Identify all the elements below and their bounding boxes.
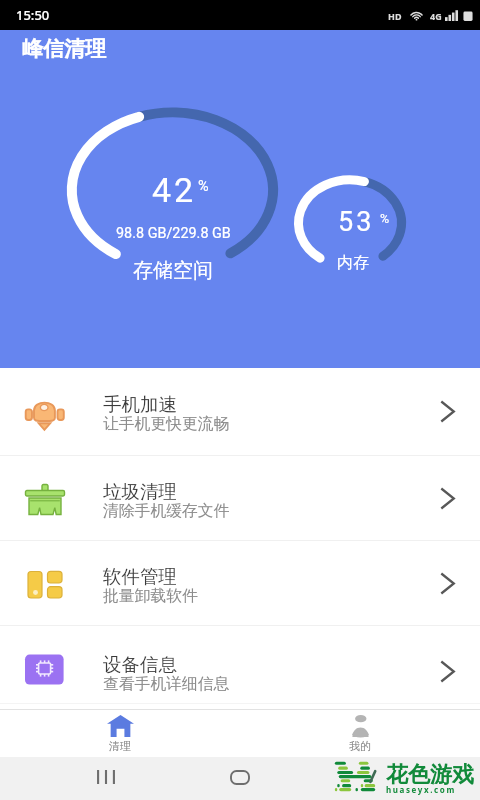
staticText: 42	[152, 170, 197, 210]
staticText: 批量卸载软件	[103, 586, 198, 606]
button[interactable]: 垃圾清理	[0, 456, 480, 540]
staticText: 峰信清理	[22, 36, 106, 62]
staticText: 15:50	[16, 6, 50, 24]
button[interactable]: 手机加速	[0, 368, 480, 455]
staticText: 清理	[109, 739, 131, 753]
staticText: 内存	[337, 253, 369, 273]
staticText: 查看手机详细信息	[103, 674, 230, 694]
staticText: 清除手机缓存文件	[103, 501, 230, 521]
staticText: 设备信息	[103, 653, 177, 676]
staticText: 软件管理	[103, 565, 177, 588]
staticText: 让手机更快更流畅	[103, 414, 230, 434]
staticText: 手机加速	[103, 393, 177, 416]
other: Recent apps	[97, 770, 115, 784]
staticText: 4G	[430, 10, 442, 22]
staticText: 垃圾清理	[103, 480, 177, 503]
button[interactable]: 我的	[240, 710, 480, 757]
staticText: %	[198, 178, 209, 195]
staticText: 花色游戏	[386, 761, 474, 789]
staticText: 我的	[349, 739, 371, 753]
staticText: 53	[338, 206, 375, 238]
staticText: HD	[388, 10, 402, 22]
button[interactable]: 设备信息	[0, 626, 480, 716]
button[interactable]: 软件管理	[0, 541, 480, 625]
other: Home	[231, 771, 249, 784]
staticText: 98.8 GB/229.8 GB	[116, 225, 231, 242]
staticText: huaseyx.com	[386, 784, 456, 795]
button[interactable]: 清理	[0, 710, 240, 757]
staticText: 存储空间	[133, 258, 213, 283]
staticText: %	[380, 211, 390, 226]
